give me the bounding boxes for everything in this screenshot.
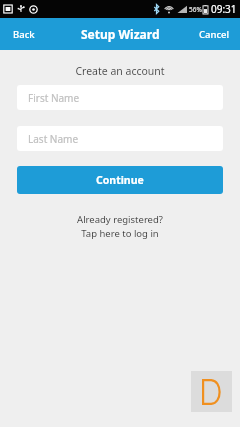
staticText: Tap here to log in bbox=[81, 227, 159, 240]
button[interactable]: Back bbox=[0, 18, 48, 50]
staticText: 56% bbox=[189, 5, 202, 14]
staticText: Continue bbox=[96, 173, 144, 187]
button[interactable]: Cancel bbox=[189, 18, 240, 50]
staticText: Already registered? bbox=[77, 213, 163, 226]
button[interactable]: First Name bbox=[17, 85, 223, 110]
button[interactable]: Already registered? bbox=[71, 212, 169, 241]
button[interactable]: Last Name bbox=[17, 126, 223, 151]
staticText: Setup Wizard bbox=[81, 26, 160, 42]
button[interactable]: Continue bbox=[17, 166, 223, 194]
staticText: Cancel bbox=[199, 28, 230, 41]
staticText: Back bbox=[13, 28, 35, 41]
staticText: 09:31 bbox=[211, 2, 237, 16]
staticText: Last Name bbox=[28, 132, 79, 146]
staticText: Create an account bbox=[75, 64, 165, 78]
staticText: First Name bbox=[28, 91, 80, 105]
